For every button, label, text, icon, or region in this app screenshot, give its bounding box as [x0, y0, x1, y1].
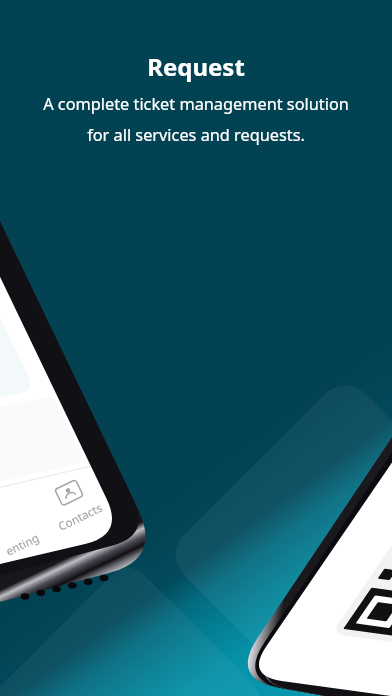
staticText: Request	[147, 50, 245, 83]
staticText: A complete ticket management solution fo…	[43, 93, 349, 145]
